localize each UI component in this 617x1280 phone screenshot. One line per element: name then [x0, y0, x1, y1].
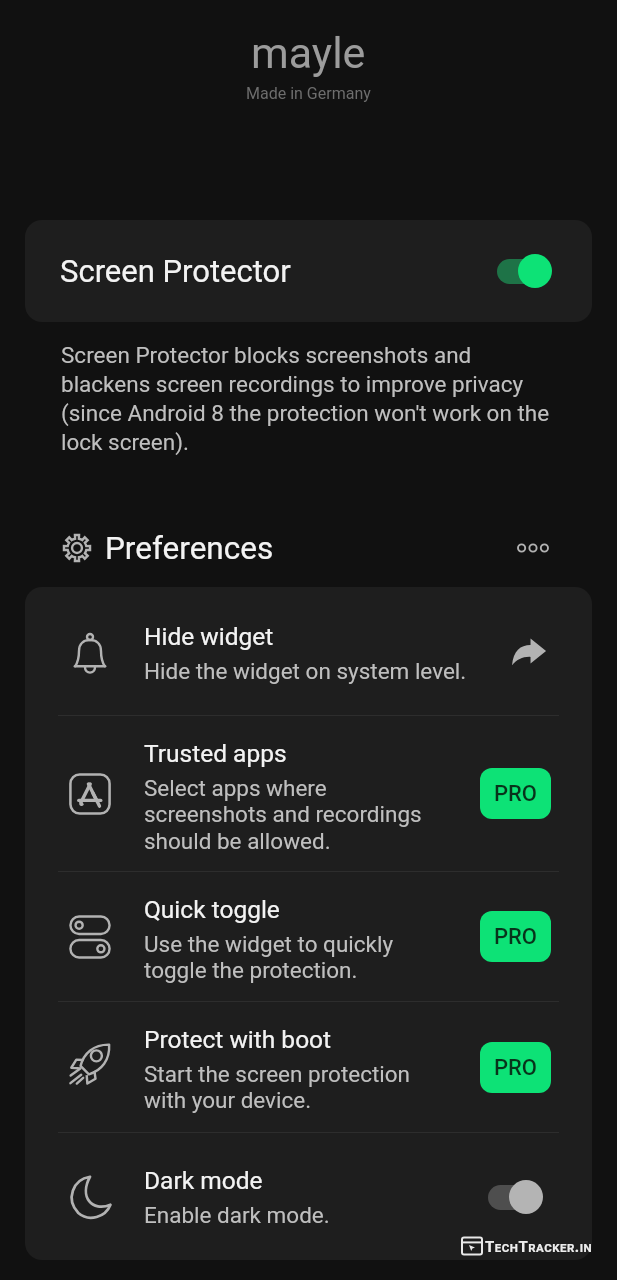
staticText: Use the widget to quickly toggle the pro… [144, 931, 434, 983]
staticText: Screen Protector blocks screenshots and … [61, 342, 556, 455]
staticText: TECHTRACKER.IN [485, 1238, 593, 1256]
staticText: mayle [251, 28, 366, 78]
staticText: Enable dark mode. [144, 1202, 478, 1228]
staticText: Hide the widget on system level. [144, 658, 478, 684]
staticText: Protect with boot [144, 1025, 332, 1054]
staticText: PRO [494, 1055, 538, 1081]
button[interactable]: Protect with boot [25, 1002, 592, 1132]
staticText: Preferences [105, 530, 274, 567]
button[interactable]: Dark mode toggle [488, 1179, 543, 1215]
button[interactable]: More options [511, 526, 555, 570]
button[interactable]: Trusted apps [25, 716, 592, 871]
staticText: Screen Protector [60, 253, 291, 289]
staticText: Start the screen protection with your de… [144, 1061, 434, 1113]
staticText: Quick toggle [144, 895, 280, 924]
staticText: Hide widget [144, 622, 274, 651]
staticText: Dark mode [144, 1166, 263, 1195]
button[interactable]: Quick toggle [25, 872, 592, 1001]
button[interactable]: Open [502, 625, 554, 677]
staticText: Trusted apps [144, 739, 287, 768]
staticText: PRO [494, 924, 538, 950]
button[interactable]: Screen Protector toggle [497, 253, 552, 289]
button[interactable]: PRO [480, 911, 551, 962]
staticText: PRO [494, 781, 538, 807]
button[interactable]: Screen Protector [25, 220, 592, 322]
button[interactable]: PRO [480, 768, 551, 819]
button[interactable]: PRO [480, 1042, 551, 1093]
button[interactable]: Hide widget [25, 587, 592, 715]
staticText: Select apps where screenshots and record… [144, 775, 434, 854]
staticText: Made in Germany [246, 84, 371, 103]
button[interactable]: Dark mode [25, 1133, 592, 1260]
